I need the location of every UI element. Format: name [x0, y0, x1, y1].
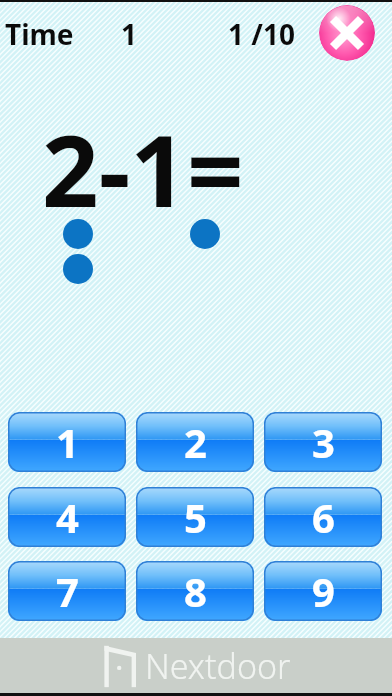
button[interactable]: 9 — [264, 561, 382, 621]
staticText: 1 — [56, 415, 79, 469]
button[interactable]: 1 — [8, 412, 126, 472]
button[interactable]: 8 — [136, 561, 254, 621]
staticText: 2 — [184, 415, 207, 469]
button[interactable]: 6 — [264, 487, 382, 547]
button[interactable]: 2 — [136, 412, 254, 472]
button[interactable]: 5 — [136, 487, 254, 547]
staticText: Time — [5, 15, 74, 53]
staticText: 8 — [184, 564, 207, 618]
staticText: 7 — [56, 564, 79, 618]
button[interactable]: 7 — [8, 561, 126, 621]
staticText: 2-1= — [42, 101, 244, 236]
button[interactable]: 3 — [264, 412, 382, 472]
staticText: 1 — [121, 15, 138, 53]
staticText: Nextdoor — [145, 643, 291, 689]
staticText: 3 — [312, 415, 335, 469]
staticText: 1 /10 — [228, 15, 295, 53]
button[interactable]: 4 — [8, 487, 126, 547]
staticText: 4 — [56, 490, 79, 544]
button[interactable]: Nextdoor advertisement — [0, 638, 392, 693]
staticText: 6 — [312, 490, 335, 544]
staticText: 5 — [184, 490, 207, 544]
staticText: 9 — [312, 564, 335, 618]
button[interactable]: Close — [319, 5, 375, 61]
